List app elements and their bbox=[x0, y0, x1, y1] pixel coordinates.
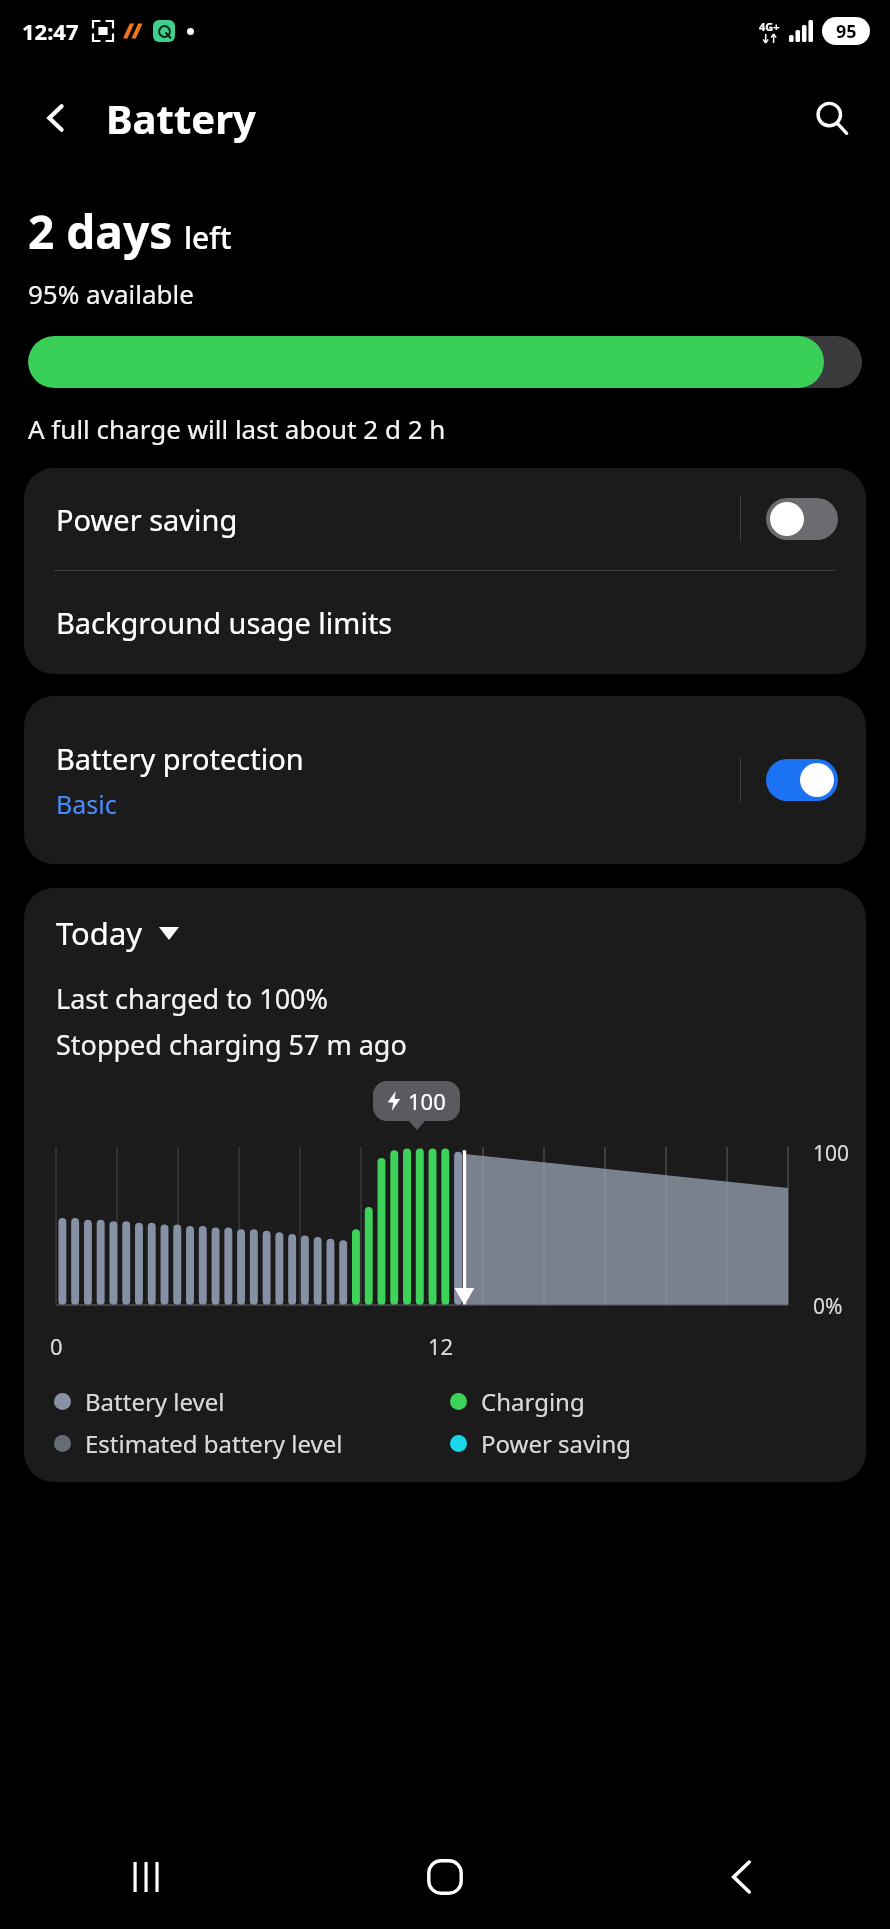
button[interactable]: Back bbox=[34, 96, 78, 140]
button[interactable]: Home bbox=[296, 1825, 593, 1929]
button[interactable]: Battery protection toggle bbox=[766, 759, 838, 801]
staticText: 0 bbox=[50, 1331, 63, 1361]
staticText: Basic bbox=[56, 787, 117, 821]
staticText: Estimated battery level bbox=[85, 1427, 343, 1460]
staticText: Charging bbox=[481, 1385, 585, 1418]
button[interactable]: Recents bbox=[0, 1825, 296, 1929]
staticText: 4G+ bbox=[759, 19, 780, 34]
staticText: Last charged to 100% bbox=[56, 980, 328, 1017]
staticText: 2 days bbox=[28, 200, 173, 263]
button[interactable]: Today bbox=[56, 912, 179, 954]
button[interactable]: Power saving toggle bbox=[766, 498, 838, 540]
button[interactable]: Back bbox=[593, 1825, 890, 1929]
staticText: 12 bbox=[428, 1331, 454, 1361]
staticText: 95% available bbox=[28, 276, 194, 311]
staticText: Background usage limits bbox=[56, 603, 393, 642]
staticText: 12:47 bbox=[22, 16, 79, 46]
staticText: A full charge will last about 2 d 2 h bbox=[28, 411, 446, 446]
staticText: Battery level bbox=[85, 1385, 225, 1418]
staticText: 0% bbox=[813, 1292, 843, 1321]
staticText: Battery protection bbox=[56, 739, 304, 778]
staticText: 100 bbox=[408, 1086, 446, 1116]
staticText: 100 bbox=[813, 1139, 850, 1168]
button[interactable]: Battery protection bbox=[24, 696, 866, 864]
staticText: Power saving bbox=[56, 500, 740, 539]
button[interactable]: Power saving bbox=[24, 468, 866, 570]
staticText: 95 bbox=[836, 19, 857, 44]
staticText: Power saving bbox=[481, 1427, 632, 1460]
staticText: left bbox=[184, 217, 232, 258]
staticText: Battery bbox=[106, 91, 256, 145]
staticText: Stopped charging 57 m ago bbox=[56, 1026, 407, 1063]
button[interactable]: Search bbox=[808, 94, 856, 142]
button[interactable]: Background usage limits bbox=[24, 571, 866, 674]
staticText: Today bbox=[56, 912, 143, 954]
